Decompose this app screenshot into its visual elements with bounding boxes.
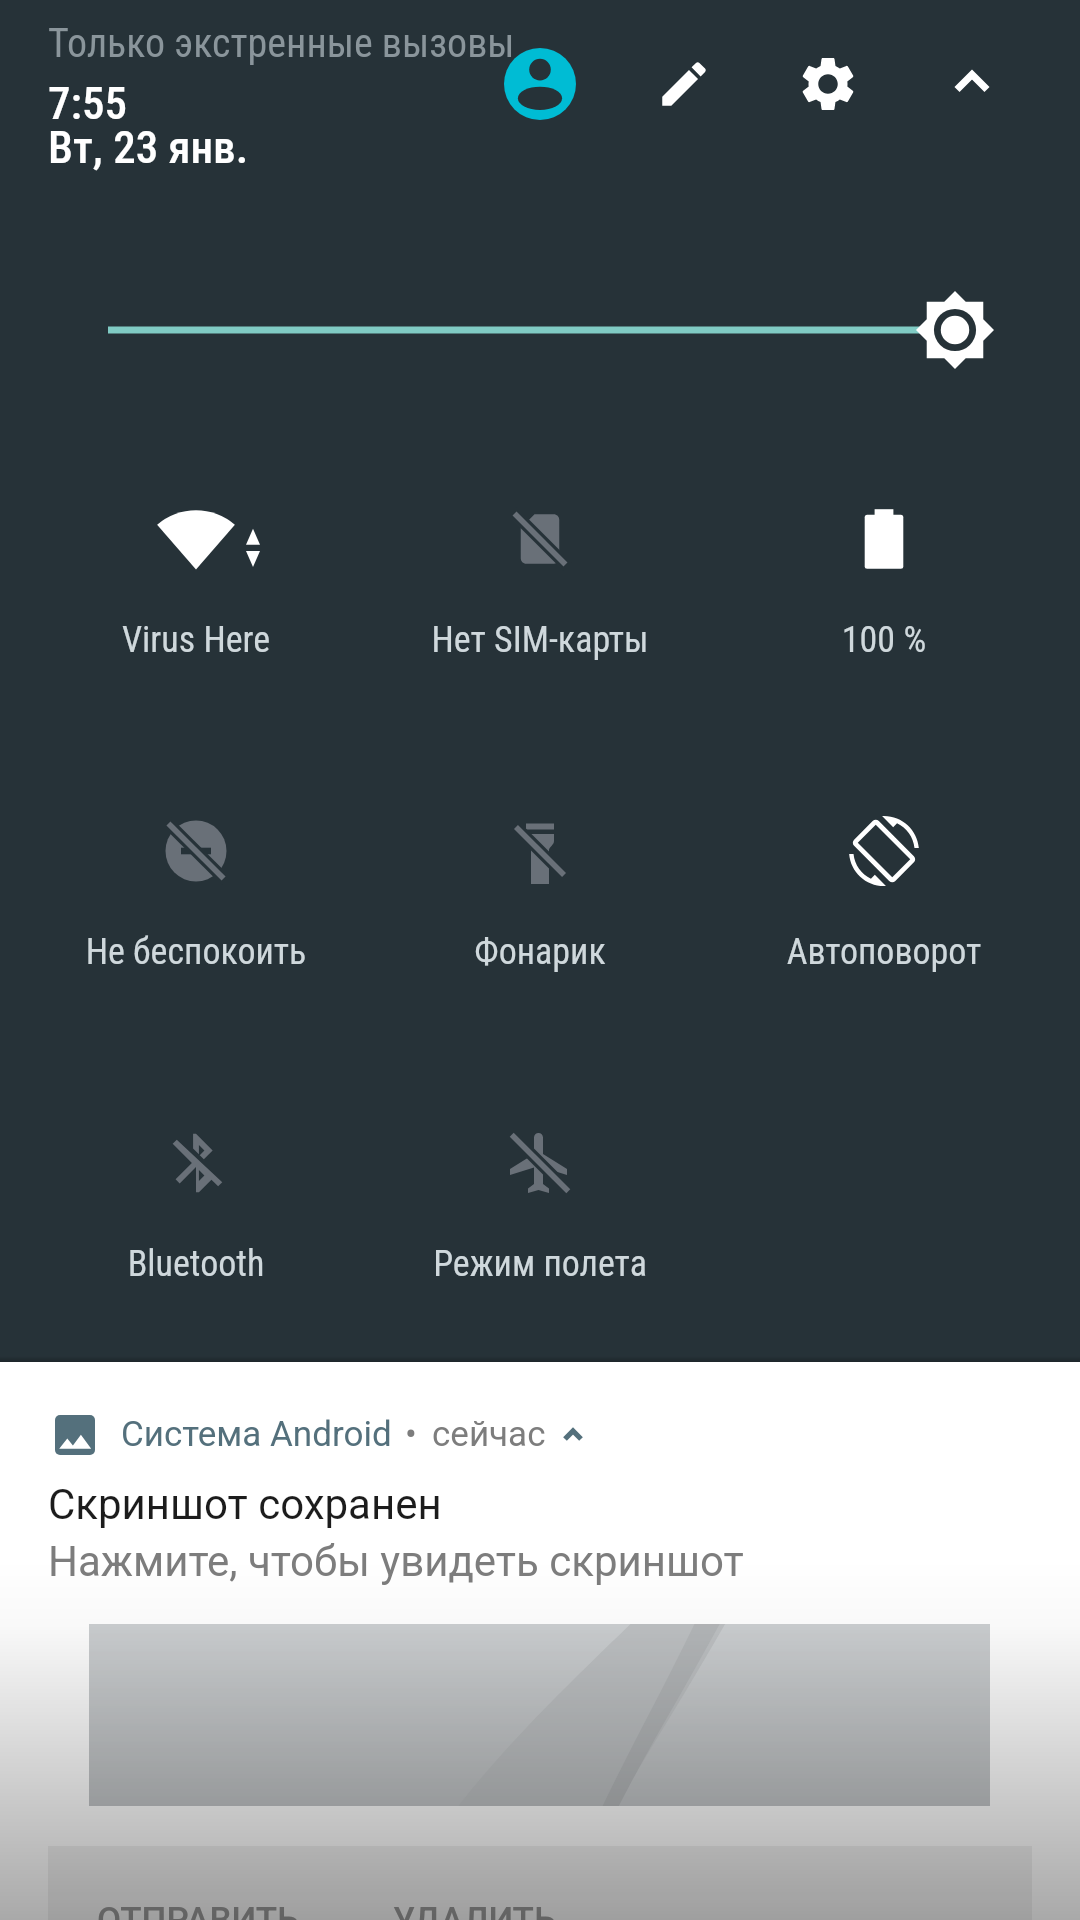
staticText: Только экстренные вызовы — [48, 20, 515, 67]
button[interactable]: Фонарик — [368, 771, 712, 1021]
button[interactable]: 100 % — [712, 459, 1056, 709]
button[interactable]: УДАЛИТЬ — [393, 1900, 557, 1920]
button[interactable]: Brightness — [0, 272, 1080, 388]
staticText: Нажмите, чтобы увидеть скриншот — [48, 1537, 744, 1586]
button[interactable]: Нет SIM-карты — [368, 459, 712, 709]
staticText: Не беспокоить — [24, 931, 368, 973]
button[interactable]: Bluetooth — [24, 1083, 368, 1333]
staticText: Скриншот сохранен — [48, 1480, 442, 1529]
staticText: 100 % — [712, 619, 1056, 661]
staticText: Нет SIM-карты — [368, 619, 712, 661]
button[interactable]: Settings — [778, 34, 878, 134]
staticText: Bluetooth — [24, 1243, 368, 1285]
button[interactable]: ОТПРАВИТЬ — [97, 1900, 300, 1920]
staticText: Система Android — [121, 1414, 392, 1455]
button[interactable]: Автоповорот — [712, 771, 1056, 1021]
staticText: Фонарик — [368, 931, 712, 973]
button[interactable]: Система Android — [0, 1362, 1080, 1832]
staticText: • — [405, 1414, 417, 1455]
staticText: сейчас — [432, 1414, 546, 1455]
button[interactable]: Collapse — [922, 32, 1022, 132]
button[interactable]: Режим полета — [368, 1083, 712, 1333]
button[interactable]: Account — [490, 34, 590, 134]
button[interactable]: Не беспокоить — [24, 771, 368, 1021]
staticText: Режим полета — [368, 1243, 712, 1285]
button[interactable]: Virus Here — [24, 459, 368, 709]
staticText: Автоповорот — [712, 931, 1056, 973]
button[interactable]: Edit — [634, 34, 734, 134]
staticText: Вт, 23 янв. — [48, 121, 249, 174]
staticText: Virus Here — [24, 619, 368, 661]
staticText: 7:55 — [48, 77, 127, 130]
